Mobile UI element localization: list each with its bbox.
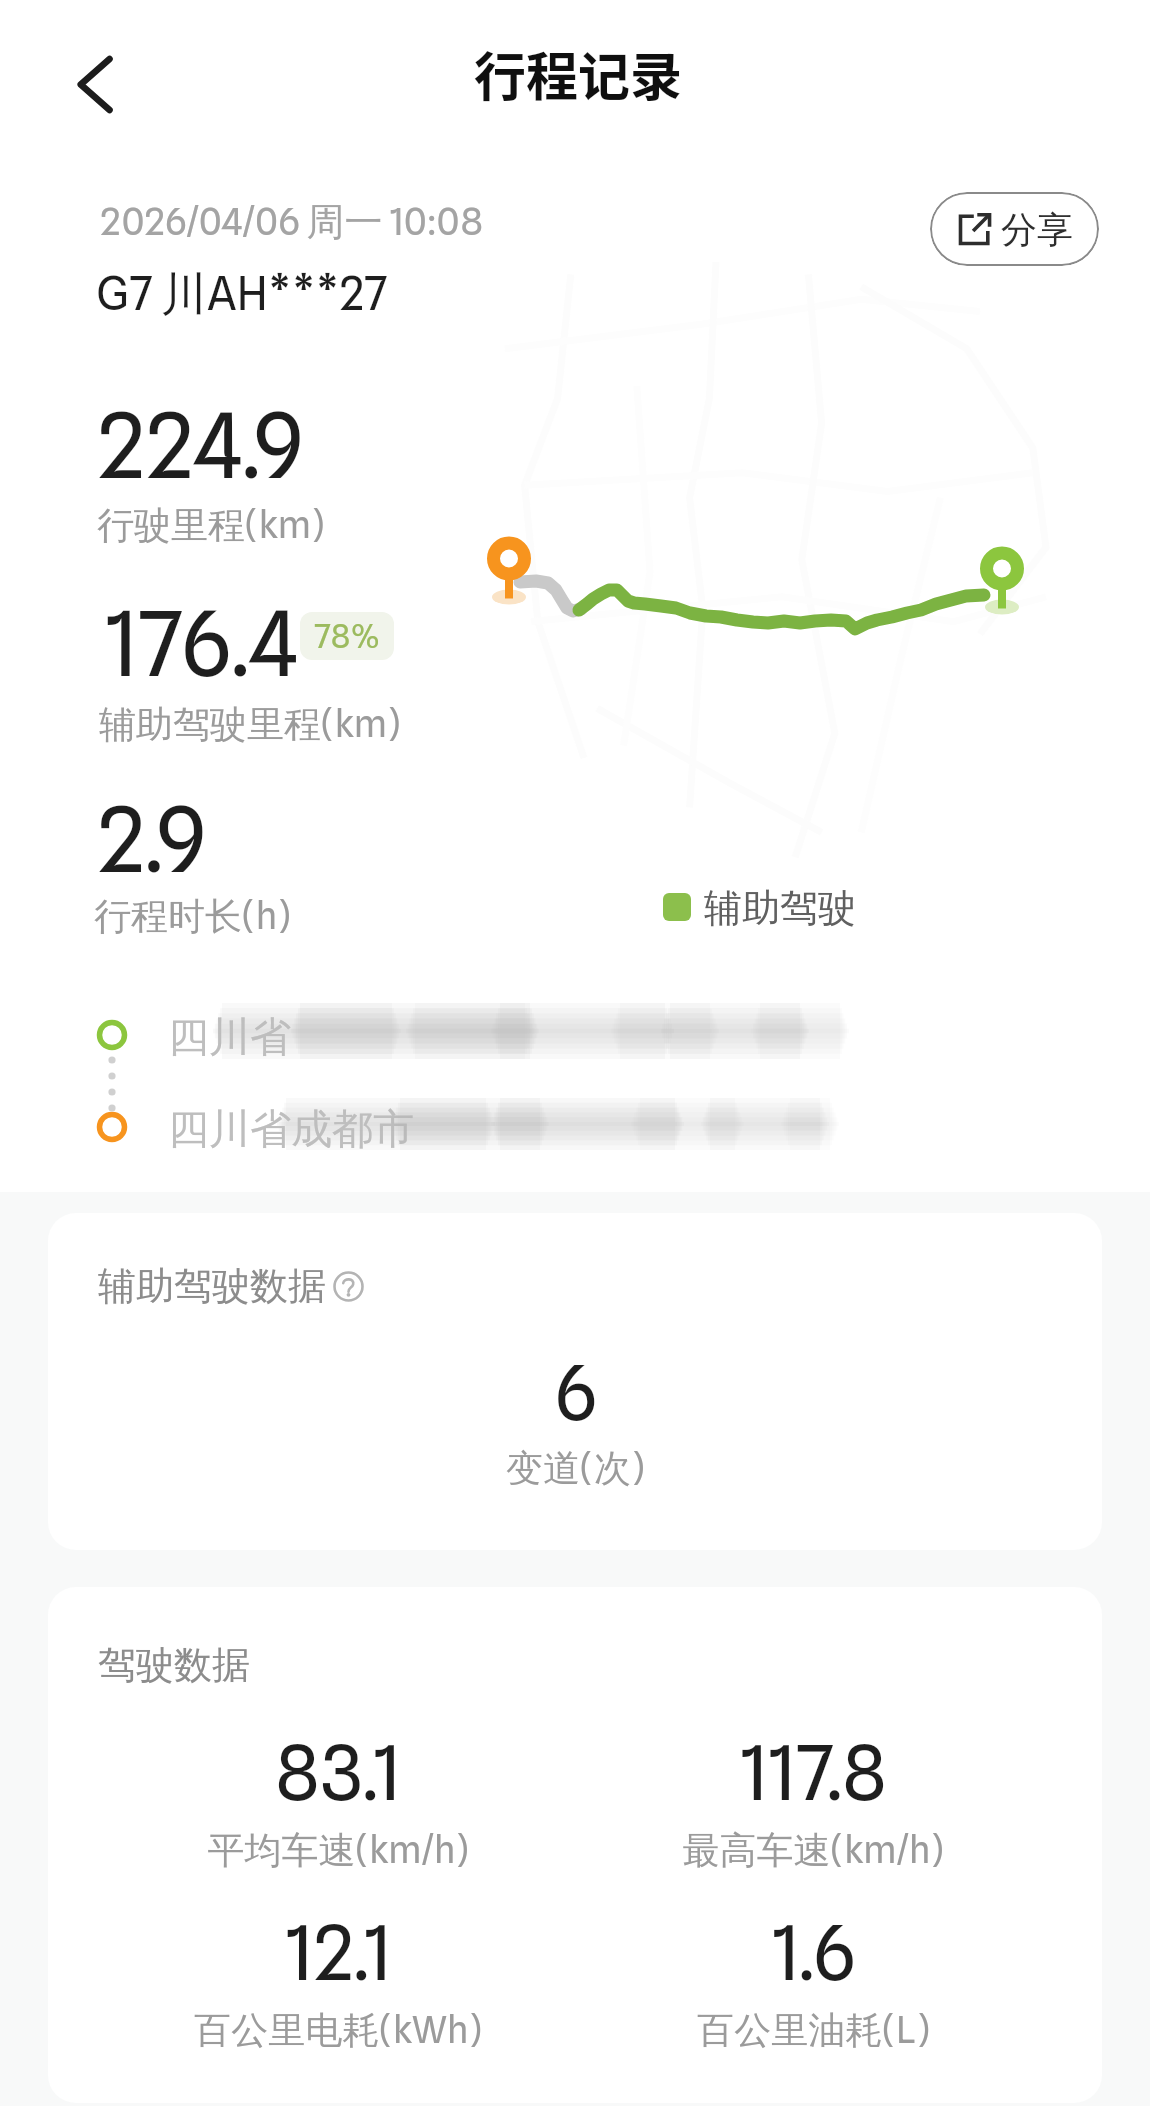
staticText: 1.6: [771, 1908, 855, 1998]
staticText: 117.8: [739, 1728, 887, 1818]
staticText: 辅助驾驶: [704, 884, 856, 930]
staticText: 行程记录: [474, 36, 683, 111]
staticText: 最高车速(km/h): [682, 1827, 944, 1874]
staticText: 行驶里程(km): [97, 502, 325, 549]
staticText: 行程时长(h): [94, 893, 291, 940]
staticText: 百公里电耗(kWh): [194, 2007, 482, 2054]
button[interactable]: Back: [45, 34, 145, 134]
staticText: 变道(次): [506, 1445, 645, 1492]
staticText: 6: [555, 1348, 597, 1438]
staticText: 2026/04/06 周一 10:08: [100, 198, 484, 246]
staticText: 辅助驾驶里程(km): [99, 701, 401, 748]
button[interactable]: Share: [930, 192, 1099, 266]
button[interactable]: 辅助驾驶: [663, 884, 856, 930]
staticText: 12.1: [284, 1908, 393, 1998]
staticText: 78%: [314, 616, 380, 656]
staticText: 176.4: [104, 590, 298, 697]
staticText: 四川省: [168, 1012, 291, 1064]
staticText: 驾驶数据: [98, 1641, 250, 1689]
button[interactable]: 辅助驾驶数据: [48, 1213, 1102, 1550]
staticText: 83.1: [275, 1728, 402, 1818]
staticText: 224.9: [97, 392, 304, 499]
staticText: 平均车速(km/h): [207, 1827, 469, 1874]
staticText: 辅助驾驶数据: [98, 1262, 326, 1310]
staticText: 四川省成都市: [168, 1104, 414, 1156]
button[interactable]: 驾驶数据: [48, 1587, 1102, 2103]
staticText: 分享: [1001, 207, 1073, 252]
button[interactable]: About assisted-driving data: [333, 1271, 364, 1302]
staticText: 百公里油耗(L): [697, 2007, 930, 2054]
staticText: 2.9: [97, 786, 207, 893]
staticText: G7 川AH***27: [96, 266, 388, 324]
